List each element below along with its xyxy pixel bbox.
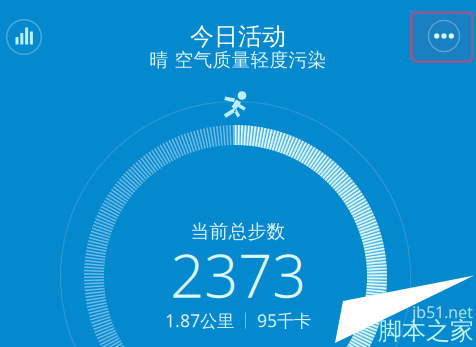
staticText: 当前总步数 [190,220,285,243]
staticText: 1.87公里 [165,309,234,332]
button[interactable]: More options [422,14,466,58]
staticText: 晴 空气质量轻度污染 [149,48,326,71]
button[interactable]: Activity statistics [2,15,46,59]
staticText: 脚本之家 [378,316,474,346]
staticText: 2373 [170,235,306,314]
staticText: jb51.net [412,301,473,323]
staticText: 今日活动 [190,22,286,51]
staticText: 95千卡 [257,309,311,332]
